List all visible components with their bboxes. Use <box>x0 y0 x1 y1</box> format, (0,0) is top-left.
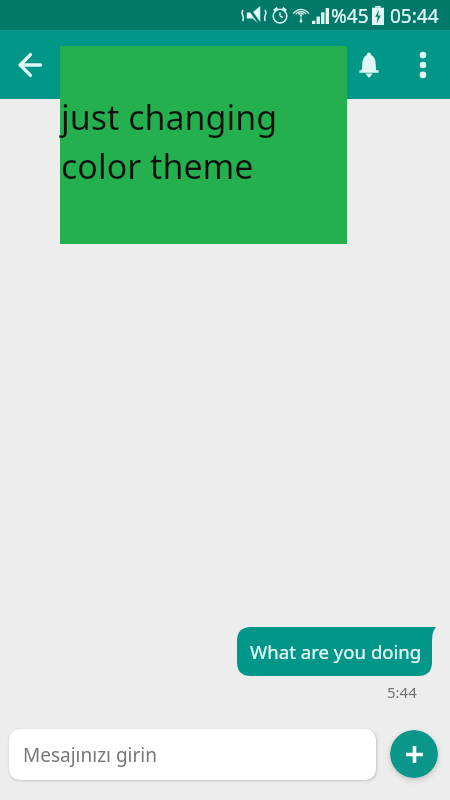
button[interactable]: Back <box>10 45 50 85</box>
staticText: %45 <box>331 3 369 29</box>
button[interactable]: What are you doing <box>237 627 436 676</box>
staticText: Mesajınızı girin <box>23 742 158 768</box>
staticText: 05:44 <box>390 3 439 29</box>
button[interactable]: Notifications <box>347 30 391 99</box>
button[interactable]: More options <box>402 30 444 99</box>
staticText: What are you doing <box>250 639 422 664</box>
staticText: just changing color theme <box>61 94 301 189</box>
button[interactable]: Send <box>390 730 438 778</box>
button[interactable]: Mesajınızı girin <box>9 729 376 780</box>
staticText: 5:44 <box>387 682 417 702</box>
